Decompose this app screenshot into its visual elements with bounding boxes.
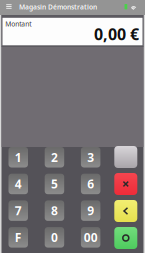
staticText: 7 xyxy=(15,203,22,219)
button[interactable]: 3 xyxy=(81,147,100,167)
staticText: Magasin Démonstration xyxy=(19,3,97,11)
button[interactable]: 5 xyxy=(45,174,64,194)
staticText: 1 xyxy=(15,149,22,165)
button[interactable]: Effacer xyxy=(114,200,137,222)
staticText: 8 xyxy=(51,203,58,219)
staticText: F xyxy=(15,229,22,245)
button[interactable]: 1 xyxy=(8,147,28,167)
button[interactable]: 7 xyxy=(8,200,28,221)
button[interactable]: 9 xyxy=(81,200,100,221)
button[interactable]: Menu xyxy=(2,0,15,13)
staticText: 9 xyxy=(87,203,94,219)
button[interactable]: Menu xyxy=(114,146,137,168)
button[interactable]: 4 xyxy=(8,174,28,194)
button[interactable]: Valider xyxy=(114,227,137,249)
button[interactable]: 8 xyxy=(45,200,64,221)
staticText: 6 xyxy=(87,176,94,192)
staticText: 0 xyxy=(51,229,58,245)
button[interactable]: Annuler xyxy=(114,173,137,195)
button[interactable]: F xyxy=(8,227,28,248)
staticText: 3 xyxy=(87,149,94,165)
button[interactable]: 0 xyxy=(45,227,64,248)
staticText: Montant xyxy=(5,19,31,28)
staticText: 2 xyxy=(51,149,58,165)
staticText: 5 xyxy=(51,176,58,192)
button[interactable]: 00 xyxy=(81,227,100,248)
staticText: 0,00 € xyxy=(94,23,139,45)
staticText: 4 xyxy=(15,176,22,192)
button[interactable]: 2 xyxy=(45,147,64,167)
button[interactable]: 6 xyxy=(81,174,100,194)
staticText: 00 xyxy=(84,229,98,245)
